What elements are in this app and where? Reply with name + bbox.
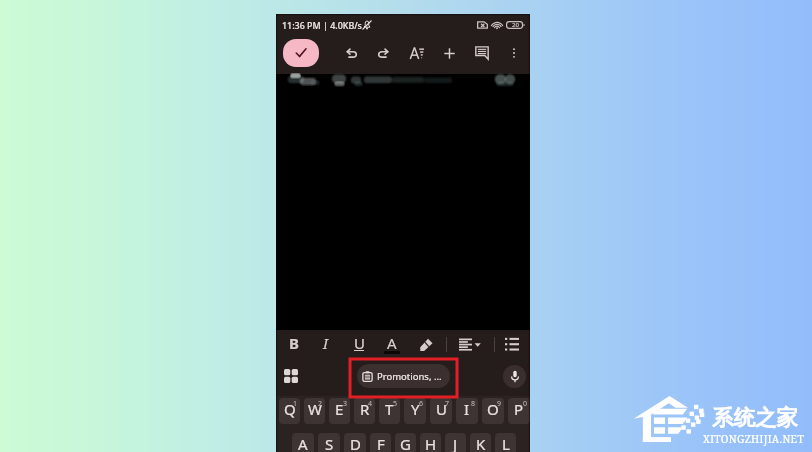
staticText: 2 [318,399,323,409]
staticText: A [387,333,397,353]
button[interactable]: E [329,398,350,424]
staticText: K [476,434,486,452]
button[interactable]: K [470,433,491,452]
button[interactable]: Insert [435,39,463,67]
button[interactable]: Q [279,398,300,424]
button[interactable]: I [312,331,338,357]
button[interactable]: A [292,433,314,452]
button[interactable]: Text formatting [403,39,431,67]
staticText: W [308,399,322,419]
button[interactable]: T [379,398,400,424]
staticText: B [289,333,299,353]
staticText: 8 [471,399,476,409]
button[interactable]: Apps [278,363,304,389]
button[interactable]: Highlight [413,331,439,357]
staticText: 系统之家 [712,404,798,431]
staticText: Q [284,399,296,419]
button[interactable]: R [354,398,375,424]
button[interactable]: Done [283,39,319,67]
button[interactable]: O [482,398,504,424]
staticText: O [487,399,499,419]
staticText: 4 [368,399,373,409]
staticText: 5 [393,399,398,409]
staticText: 20 [512,21,519,29]
button[interactable]: I [456,398,478,424]
button[interactable]: Alignment [452,331,478,357]
button[interactable]: Text color [379,331,405,357]
button[interactable]: W [304,398,325,424]
staticText: I [323,333,328,353]
button[interactable]: Bulleted list [499,331,525,357]
button[interactable]: Comment [468,39,496,67]
button[interactable]: H [420,433,441,452]
staticText: 3 [343,399,348,409]
button[interactable]: Y [404,398,426,424]
button[interactable]: Underline [346,331,372,357]
staticText: 1 [293,399,298,409]
button[interactable]: S [318,433,340,452]
button[interactable]: F [370,433,391,452]
staticText: 9 [497,399,502,409]
staticText: Promotions, ... [377,370,442,383]
staticText: U [436,399,447,419]
staticText: L [502,434,510,452]
staticText: J [453,434,458,452]
staticText: U [354,333,365,353]
button[interactable]: Redo [369,39,397,67]
staticText: T [385,399,394,419]
staticText: P [514,399,524,419]
staticText: S [325,434,334,452]
staticText: E [335,399,344,419]
button[interactable]: G [395,433,416,452]
staticText: 7 [445,399,450,409]
button[interactable]: L [495,433,516,452]
staticText: F [377,434,385,452]
staticText: A [298,434,308,452]
staticText: G [400,434,411,452]
staticText: 6 [419,399,424,409]
staticText: XITONGZHIJIA.NET [703,432,805,446]
staticText: I [464,399,470,419]
button[interactable]: Promotions, ... [357,364,450,388]
button[interactable]: P [508,398,530,424]
staticText: 11:36 PM | 4.0KB/s [282,19,362,31]
staticText: H [425,434,437,452]
button[interactable]: Voice input [503,365,526,388]
button[interactable]: Undo [338,39,366,67]
button[interactable]: More options [500,39,528,67]
staticText: D [350,434,361,452]
staticText: 0 [523,399,528,409]
staticText: Y [411,399,420,419]
button[interactable]: J [445,433,466,452]
staticText: R [360,399,370,419]
button[interactable]: D [344,433,366,452]
button[interactable]: U [430,398,452,424]
button[interactable]: B [281,331,307,357]
